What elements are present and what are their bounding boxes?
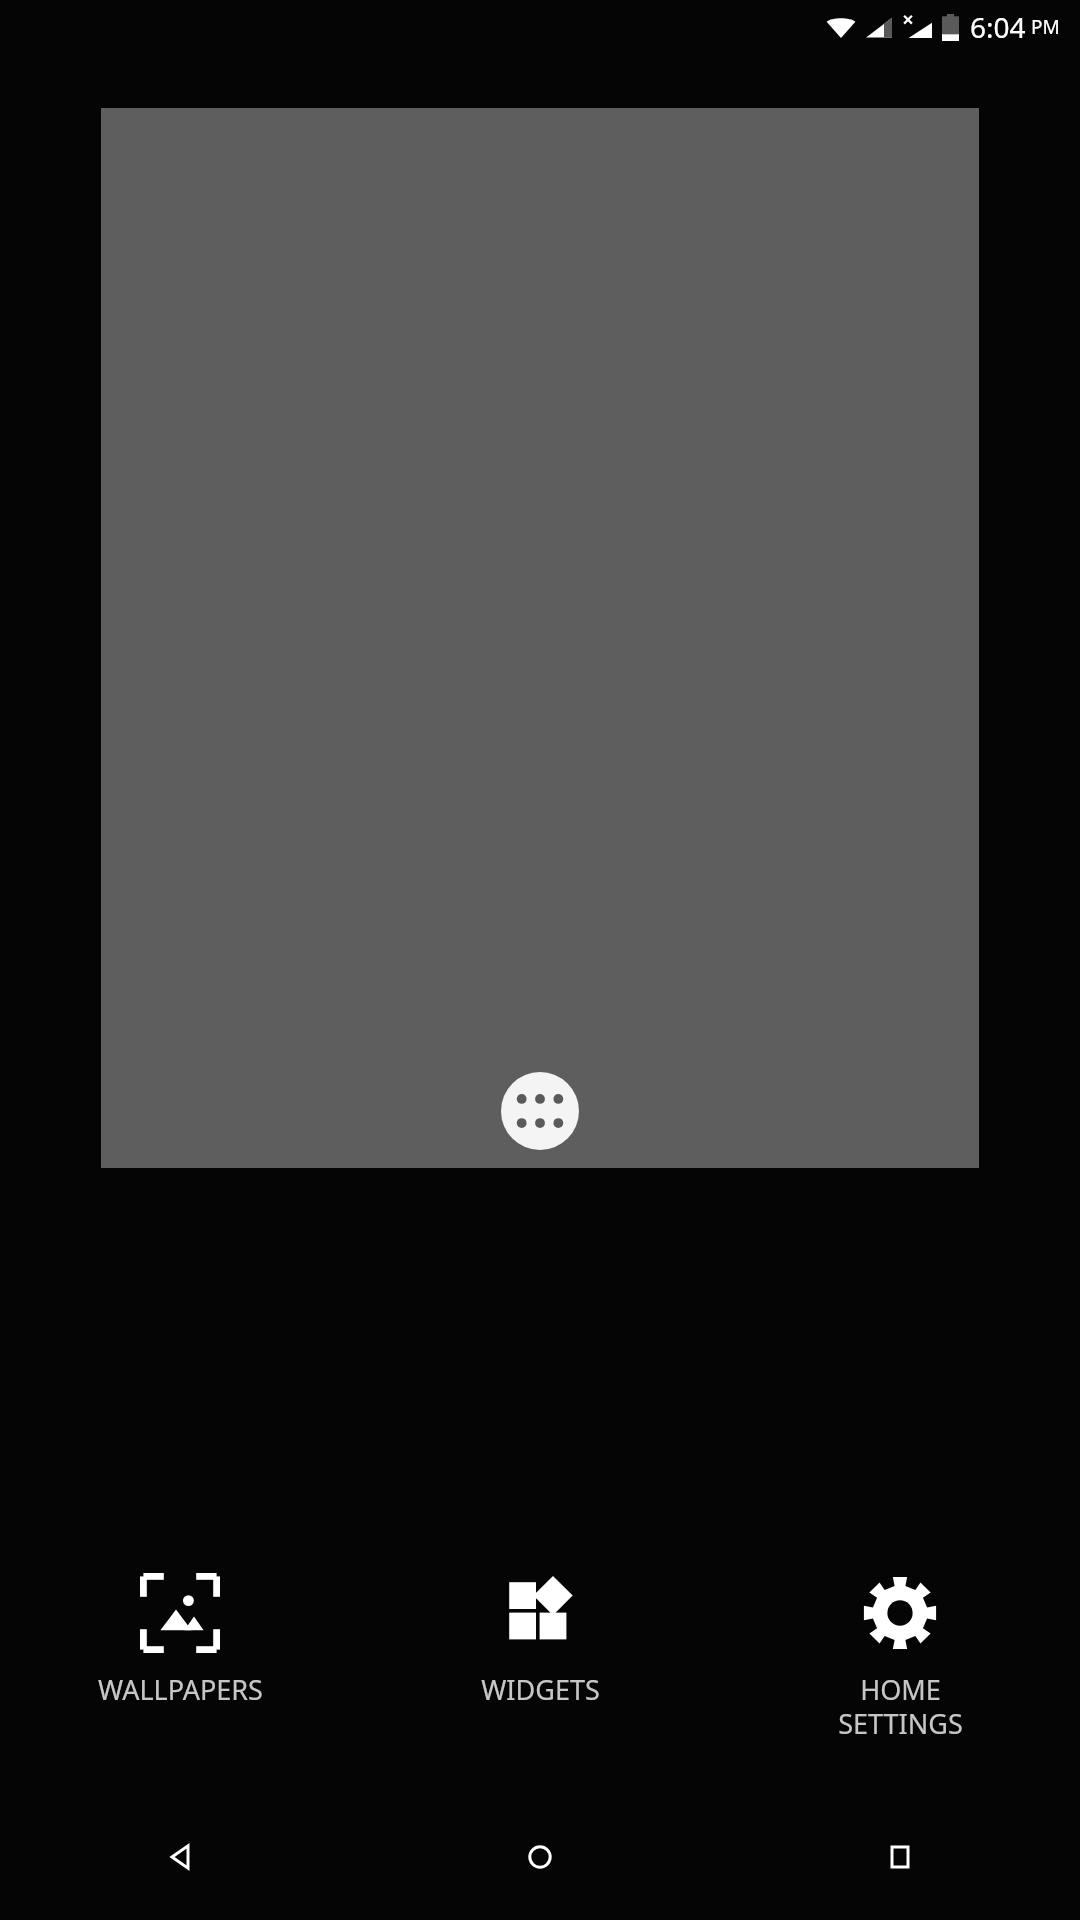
button[interactable]: Back [0,1794,360,1920]
staticText: WIDGETS [481,1671,600,1708]
staticText: WALLPAPERS [98,1671,263,1708]
staticText: 6:04 [970,8,1026,46]
button[interactable]: Wallpapers [0,1567,360,1714]
button[interactable]: Recent apps [720,1794,1080,1920]
staticText: HOME SETTINGS [838,1671,963,1742]
button[interactable]: Widgets [360,1567,720,1714]
button[interactable]: All apps [501,1072,579,1150]
button[interactable]: Home settings [720,1567,1080,1748]
button[interactable]: Home [360,1794,720,1920]
staticText: PM [1031,14,1060,40]
button[interactable]: All apps [101,108,979,1168]
